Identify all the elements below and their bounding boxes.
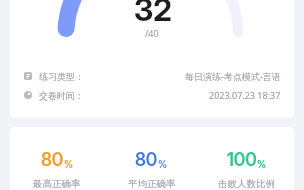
staticText: % <box>64 158 74 170</box>
button[interactable]: 80 <box>10 149 104 190</box>
staticText: 2023.07.23 18:37 <box>209 89 281 101</box>
staticText: 80 <box>41 149 64 171</box>
button[interactable]: 交卷时间： <box>10 89 294 101</box>
staticText: 每日演练-考点模式-言语 <box>185 70 281 82</box>
staticText: % <box>158 158 168 170</box>
staticText: 80 <box>135 149 158 171</box>
staticText: 最高正确率 <box>33 178 81 190</box>
staticText: 100 <box>227 149 257 171</box>
staticText: /40 <box>145 27 159 39</box>
staticText: 击败人数比例 <box>218 178 275 190</box>
staticText: 32 <box>134 0 172 29</box>
staticText: 交卷时间： <box>39 90 84 101</box>
staticText: % <box>257 158 267 170</box>
button[interactable]: 练习类型： <box>10 70 294 82</box>
staticText: 平均正确率 <box>128 178 176 190</box>
button[interactable]: 100 <box>199 149 294 190</box>
staticText: 练习类型： <box>39 71 84 82</box>
button[interactable]: 80 <box>104 149 199 190</box>
